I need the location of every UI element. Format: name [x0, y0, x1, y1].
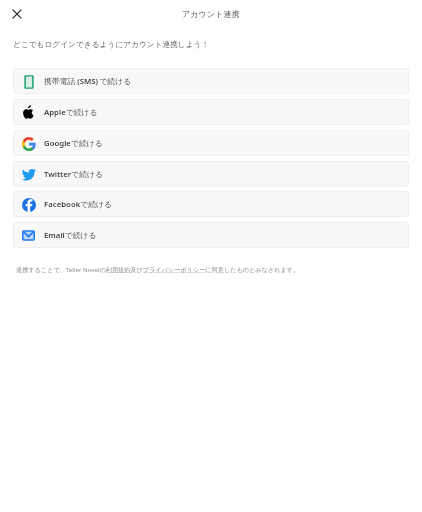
- button[interactable]: Close: [5, 2, 29, 26]
- staticText: アカウント連携: [182, 9, 240, 19]
- button[interactable]: Appleで続ける: [13, 99, 409, 125]
- button[interactable]: Googleで続ける: [13, 130, 409, 156]
- staticText: 携帯電話 (SMS) で続ける: [44, 76, 132, 87]
- staticText: Emailで続ける: [44, 230, 97, 241]
- button[interactable]: 携帯電話 (SMS) で続ける: [13, 68, 409, 94]
- button[interactable]: Emailで続ける: [13, 222, 409, 248]
- staticText: どこでもログインできるようにアカウント連携しよう！: [13, 40, 210, 50]
- button[interactable]: Twitterで続ける: [13, 161, 409, 187]
- staticText: Twitterで続ける: [44, 169, 103, 180]
- staticText: Googleで続ける: [44, 138, 103, 149]
- button[interactable]: Facebookで続ける: [13, 191, 409, 217]
- staticText: 連携することで、Teller Novelの利用規約及びプライバシーポリシーに同意…: [16, 265, 300, 273]
- staticText: Facebookで続ける: [44, 199, 113, 210]
- staticText: Appleで続ける: [44, 107, 98, 118]
